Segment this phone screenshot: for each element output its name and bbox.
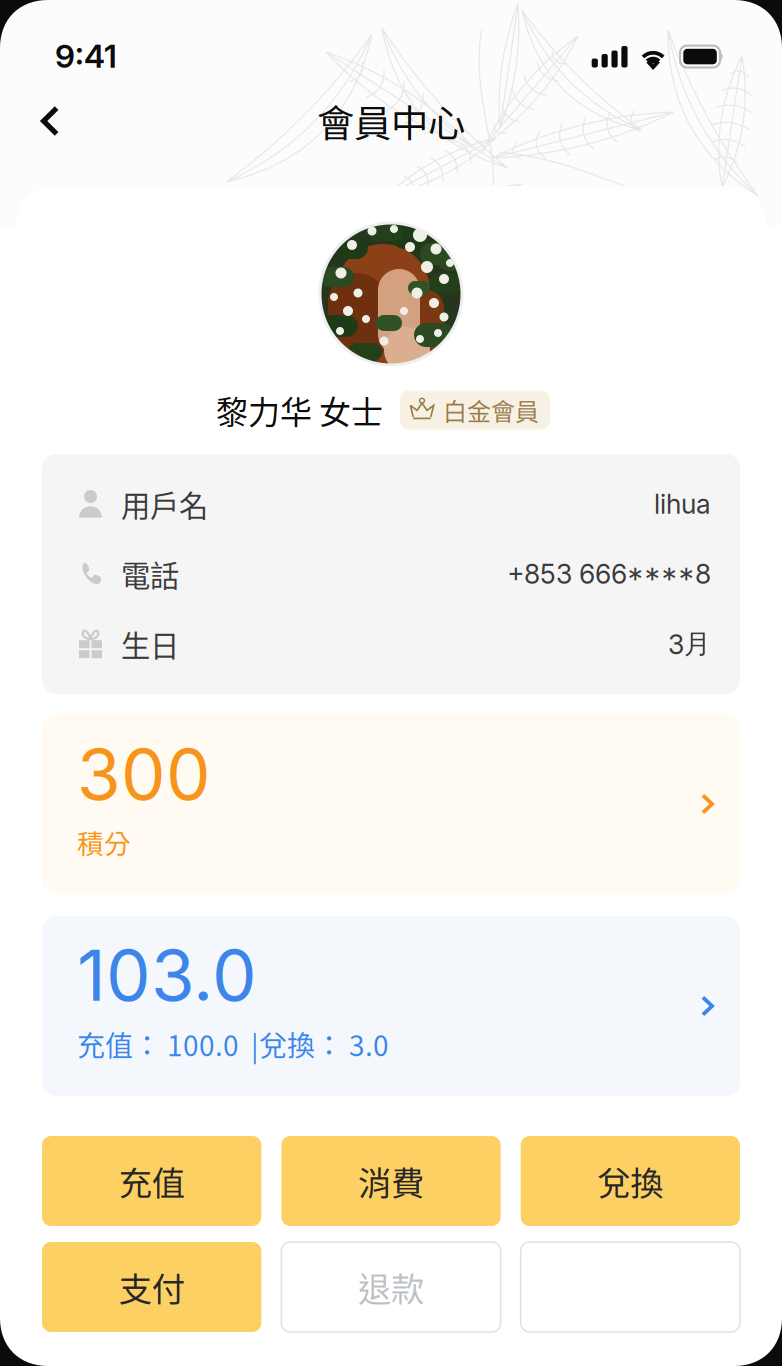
staticText: 黎力华 女士 bbox=[216, 387, 383, 433]
staticText: 103.0 bbox=[77, 932, 257, 1018]
staticText: 3月 bbox=[668, 627, 711, 661]
staticText: lihua bbox=[654, 488, 711, 520]
staticText: 退款 bbox=[358, 1263, 424, 1311]
staticText: 積分 bbox=[77, 823, 131, 861]
staticText: 充值： 100.0 |兌換： 3.0 bbox=[77, 1024, 389, 1064]
button[interactable] bbox=[521, 1242, 740, 1332]
staticText: 用戶名 bbox=[121, 483, 208, 525]
staticText: 消費 bbox=[358, 1157, 424, 1205]
button[interactable]: 支付 bbox=[42, 1242, 261, 1332]
button[interactable]: 退款 bbox=[281, 1242, 501, 1332]
staticText: 300 bbox=[77, 731, 211, 817]
staticText: 9:41 bbox=[55, 37, 117, 75]
staticText: 會員中心 bbox=[317, 94, 465, 148]
button[interactable]: Back bbox=[21, 92, 79, 150]
button[interactable]: 消費 bbox=[281, 1136, 501, 1226]
staticText: +853 666****8 bbox=[507, 558, 711, 590]
staticText: 生日 bbox=[121, 623, 179, 665]
button[interactable]: 300 bbox=[42, 714, 740, 894]
staticText: 支付 bbox=[119, 1263, 185, 1311]
button[interactable]: 充值 bbox=[42, 1136, 261, 1226]
staticText: 電話 bbox=[121, 553, 179, 595]
staticText: 兌換 bbox=[597, 1157, 663, 1205]
button[interactable]: 103.0 bbox=[42, 916, 740, 1096]
staticText: 充值 bbox=[119, 1157, 185, 1205]
button[interactable]: 兌換 bbox=[521, 1136, 740, 1226]
staticText: 白金會員 bbox=[443, 393, 539, 427]
